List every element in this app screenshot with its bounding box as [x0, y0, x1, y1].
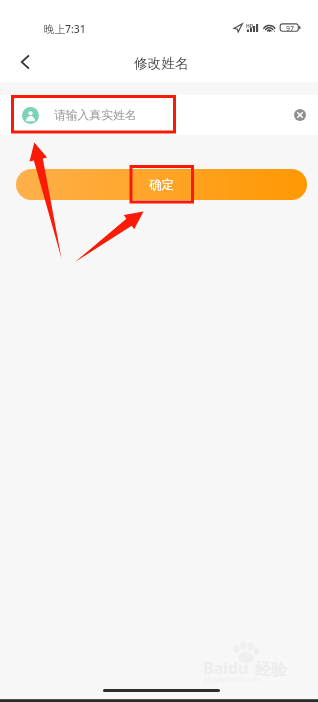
staticText: 修改姓名	[134, 55, 189, 72]
staticText: Baidu	[203, 657, 249, 679]
button[interactable]: 确定	[16, 169, 307, 200]
button[interactable]: Back	[10, 47, 40, 77]
staticText: 97	[286, 24, 295, 34]
staticText: 经验	[255, 660, 287, 680]
staticText: 确定	[149, 177, 175, 193]
staticText: 晚上7:31	[44, 22, 86, 36]
button[interactable]: Clear text	[288, 103, 312, 127]
button[interactable]: 请输入真实姓名	[0, 95, 318, 135]
staticText: HD	[246, 23, 254, 30]
staticText: 请输入真实姓名	[54, 108, 137, 123]
